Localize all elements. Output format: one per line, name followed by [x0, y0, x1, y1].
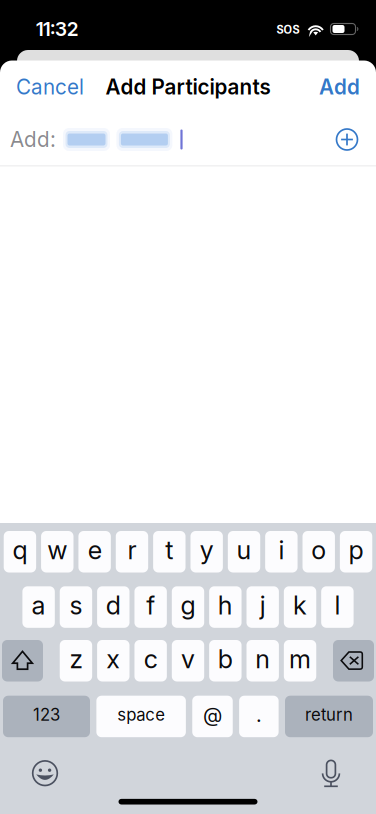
staticText: Add: [319, 74, 360, 99]
staticText: z: [69, 644, 82, 674]
staticText: w: [47, 535, 67, 565]
staticText: e: [88, 535, 102, 565]
button[interactable]: 123: [3, 696, 90, 737]
staticText: SOS: [276, 20, 299, 38]
staticText: v: [181, 644, 195, 674]
button[interactable]: s: [60, 586, 92, 628]
staticText: k: [293, 590, 307, 621]
button[interactable]: p: [340, 531, 372, 572]
button[interactable]: @: [192, 696, 233, 737]
button[interactable]: v: [172, 640, 204, 681]
button[interactable]: e: [78, 531, 111, 572]
staticText: d: [106, 590, 121, 621]
staticText: a: [32, 590, 46, 621]
staticText: s: [69, 590, 82, 621]
button[interactable]: g: [172, 586, 204, 628]
staticText: t: [165, 535, 173, 565]
button[interactable]: b: [209, 640, 242, 681]
button[interactable]: q: [4, 531, 36, 572]
staticText: y: [200, 535, 214, 565]
button[interactable]: h: [209, 586, 242, 628]
button[interactable]: Add: [303, 65, 376, 109]
button[interactable]: Add contact: [325, 117, 369, 161]
staticText: @: [203, 703, 222, 727]
button[interactable]: Delete: [333, 640, 374, 681]
button[interactable]: f: [134, 586, 167, 628]
staticText: space: [117, 705, 165, 725]
staticText: l: [334, 590, 340, 621]
button[interactable]: o: [302, 531, 335, 572]
button[interactable]: .: [239, 696, 279, 737]
staticText: q: [12, 535, 27, 565]
button[interactable]: w: [41, 531, 73, 572]
button[interactable]: t: [153, 531, 185, 572]
staticText: i: [278, 535, 284, 565]
staticText: x: [106, 644, 120, 674]
button[interactable]: u: [228, 531, 260, 572]
button[interactable]: n: [246, 640, 279, 681]
staticText: Add Participants: [105, 74, 270, 99]
staticText: g: [180, 590, 195, 621]
button[interactable]: a: [22, 586, 55, 628]
button[interactable]: r: [116, 531, 148, 572]
staticText: j: [260, 590, 266, 621]
button[interactable]: Emoji keyboard: [23, 753, 67, 793]
button[interactable]: space: [96, 696, 186, 737]
staticText: 11:32: [36, 17, 78, 41]
staticText: m: [289, 644, 311, 674]
button[interactable]: Shift: [2, 640, 43, 681]
button[interactable]: k: [284, 586, 316, 628]
button[interactable]: i: [265, 531, 298, 572]
button[interactable]: d: [97, 586, 129, 628]
button[interactable]: Dictation: [309, 753, 353, 793]
staticText: u: [236, 535, 251, 565]
button[interactable]: x: [97, 640, 129, 681]
button[interactable]: y: [190, 531, 223, 572]
button[interactable]: return: [285, 696, 373, 737]
button[interactable]: Cancel: [0, 65, 100, 109]
staticText: n: [255, 644, 270, 674]
button[interactable]: l: [321, 586, 354, 628]
staticText: b: [218, 644, 233, 674]
button[interactable]: z: [60, 640, 92, 681]
staticText: c: [144, 644, 158, 674]
staticText: Cancel: [16, 74, 84, 99]
staticText: h: [218, 590, 233, 621]
staticText: f: [146, 590, 155, 621]
staticText: p: [349, 535, 364, 565]
staticText: .: [256, 703, 262, 727]
staticText: 123: [33, 705, 60, 725]
button[interactable]: j: [246, 586, 279, 628]
staticText: r: [127, 535, 136, 565]
staticText: o: [311, 535, 326, 565]
staticText: return: [305, 705, 353, 725]
button[interactable]: c: [134, 640, 167, 681]
staticText: Add:: [10, 127, 56, 152]
button[interactable]: m: [284, 640, 316, 681]
